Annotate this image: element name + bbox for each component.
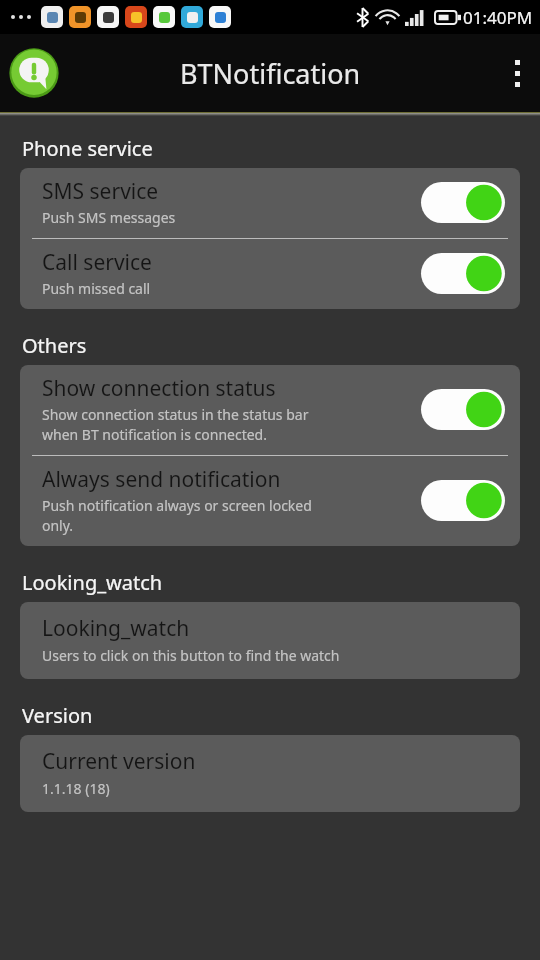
staticText: Others [22, 332, 540, 359]
staticText: SMS service [42, 177, 159, 206]
button[interactable]: Toggle setting [421, 182, 505, 223]
button[interactable]: Looking_watch [20, 602, 520, 679]
button[interactable]: Current version [20, 735, 520, 812]
staticText: Push notification always or screen locke… [42, 496, 312, 535]
staticText: Looking_watch [22, 569, 540, 596]
staticText: Users to click on this button to find th… [42, 646, 340, 665]
staticText: Push SMS messages [42, 208, 176, 227]
button[interactable]: Always send notification [20, 456, 520, 546]
staticText: Call service [42, 248, 152, 277]
staticText: Version [22, 702, 540, 729]
staticText: Always send notification [42, 465, 281, 494]
button[interactable]: Show connection status [20, 365, 520, 455]
button[interactable]: Call service [20, 239, 520, 309]
button[interactable]: Toggle setting [421, 253, 505, 294]
staticText: 01:40PM [463, 6, 533, 29]
staticText: 1.1.18 (18) [42, 779, 110, 798]
button[interactable]: Toggle setting [421, 480, 505, 521]
staticText: Looking_watch [42, 614, 190, 643]
button[interactable]: App icon, navigate up [6, 45, 62, 101]
button[interactable]: SMS service [20, 168, 520, 238]
staticText: Show connection status [42, 374, 276, 403]
staticText: Current version [42, 747, 196, 776]
staticText: Phone service [22, 135, 540, 162]
button[interactable]: Toggle setting [421, 389, 505, 430]
button[interactable]: More options [494, 34, 540, 112]
staticText: BTNotification [180, 55, 361, 92]
staticText: Push missed call [42, 279, 151, 298]
staticText: Show connection status in the status bar… [42, 405, 309, 444]
